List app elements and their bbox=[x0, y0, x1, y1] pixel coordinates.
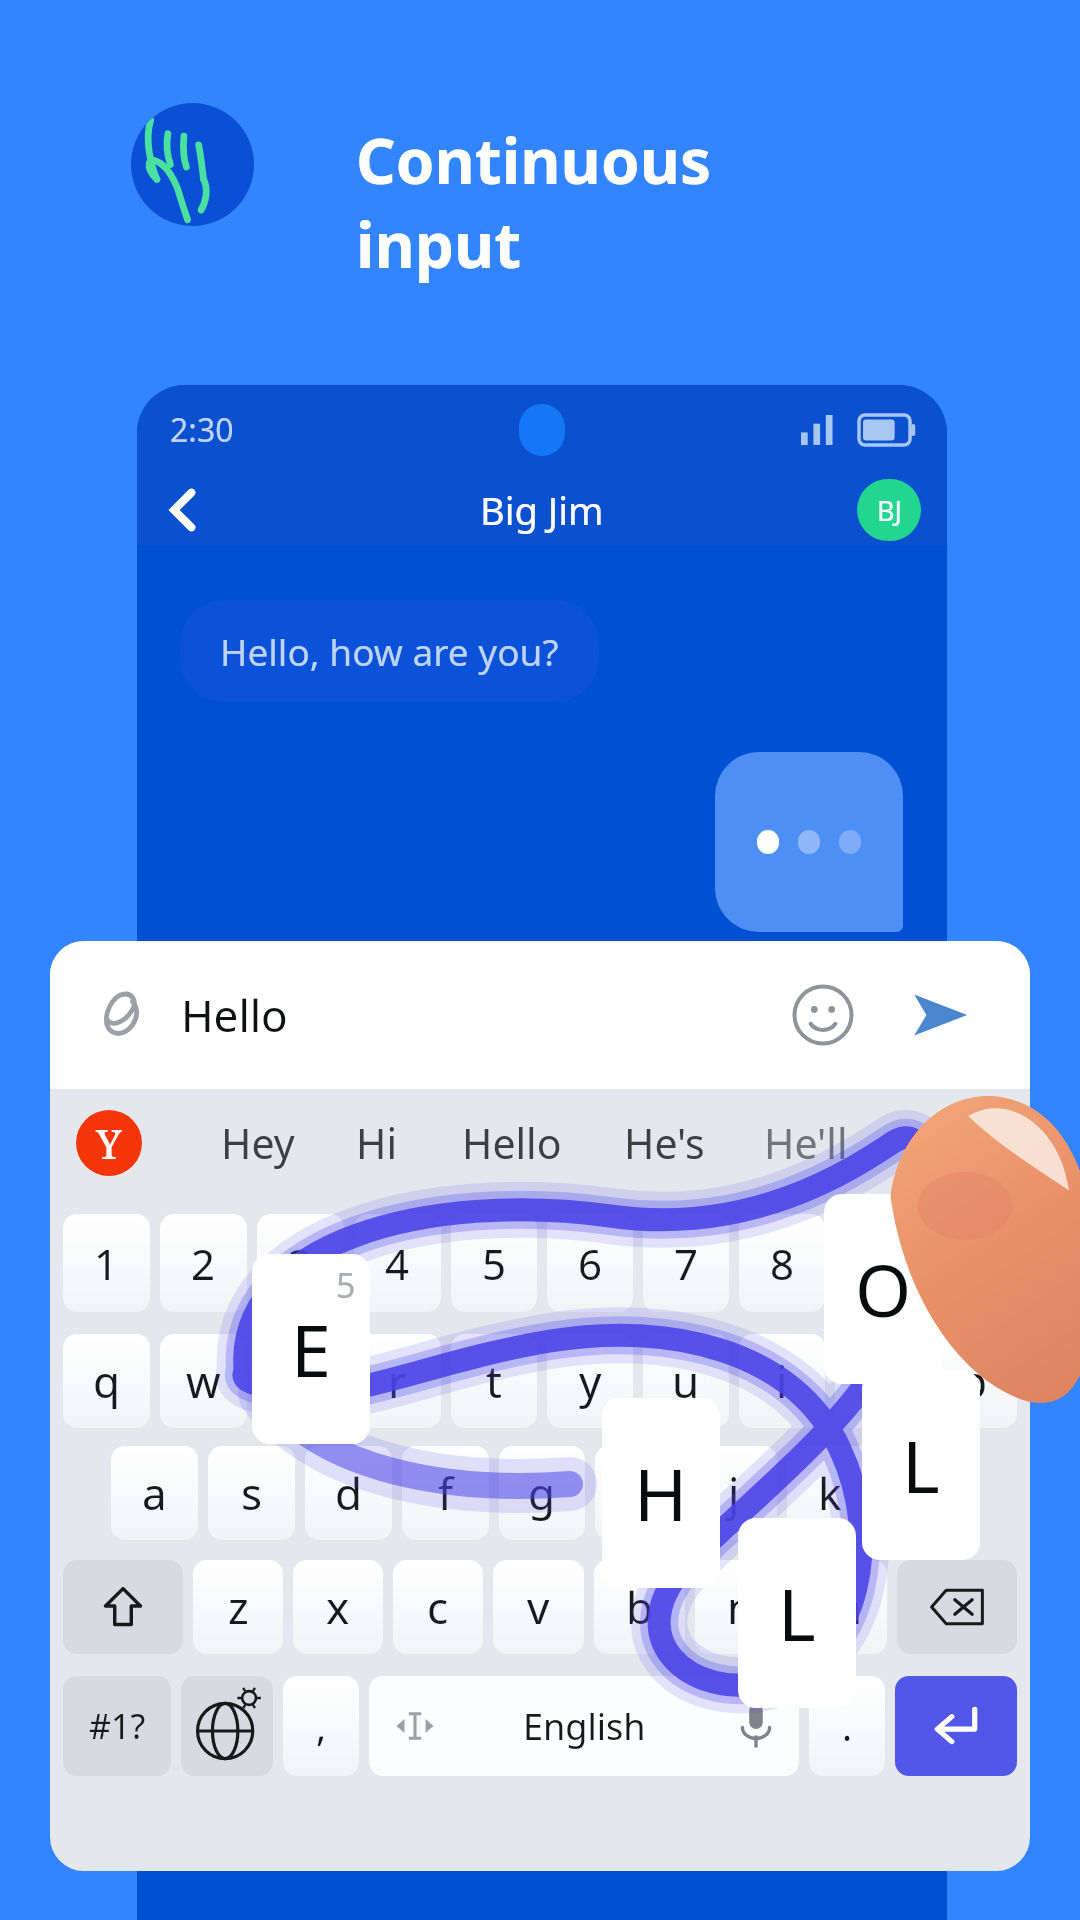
button[interactable]: Yandex bbox=[76, 1110, 142, 1176]
button[interactable]: w bbox=[160, 1334, 247, 1428]
button[interactable]: O bbox=[824, 1194, 942, 1384]
staticText: 2:30 bbox=[170, 408, 234, 452]
button[interactable]: j bbox=[691, 1446, 777, 1540]
button[interactable]: 4 bbox=[354, 1214, 441, 1312]
button[interactable]: He's bbox=[624, 1089, 705, 1197]
staticText: h bbox=[624, 1463, 652, 1523]
staticText: 1 bbox=[94, 1235, 119, 1292]
staticText: t bbox=[486, 1351, 502, 1411]
staticText: BJ bbox=[877, 492, 902, 529]
button[interactable]: t bbox=[451, 1334, 537, 1428]
button[interactable]: English bbox=[369, 1676, 799, 1776]
staticText: v bbox=[527, 1577, 550, 1637]
button[interactable]: E bbox=[252, 1254, 370, 1444]
staticText: b bbox=[626, 1577, 654, 1637]
staticText: e bbox=[288, 1351, 313, 1411]
staticText: f bbox=[438, 1463, 454, 1523]
button[interactable]: a bbox=[111, 1446, 198, 1540]
button[interactable]: r bbox=[354, 1334, 441, 1428]
button[interactable]: Language bbox=[181, 1676, 273, 1776]
staticText: 6 bbox=[578, 1235, 603, 1292]
button[interactable]: o bbox=[835, 1334, 921, 1428]
button[interactable]: n bbox=[695, 1560, 786, 1654]
button[interactable]: l bbox=[883, 1446, 969, 1540]
staticText: Continuous bbox=[356, 118, 712, 202]
staticText: i bbox=[776, 1351, 788, 1411]
staticText: #1? bbox=[89, 1703, 146, 1749]
button[interactable]: x bbox=[293, 1560, 383, 1654]
button[interactable]: d bbox=[305, 1446, 392, 1540]
staticText: q bbox=[93, 1351, 121, 1411]
button[interactable]: Enter bbox=[895, 1676, 1017, 1776]
button[interactable]: 1 bbox=[63, 1214, 150, 1312]
staticText: u bbox=[672, 1351, 700, 1411]
button[interactable]: , bbox=[283, 1676, 359, 1776]
button[interactable]: Hello, how are you? bbox=[180, 600, 599, 702]
button[interactable]: Hi bbox=[356, 1089, 397, 1197]
staticText: Big Jim bbox=[480, 484, 604, 536]
button[interactable]: Attach bbox=[92, 987, 148, 1043]
button[interactable]: 6 bbox=[547, 1214, 633, 1312]
button[interactable]: p bbox=[931, 1334, 1017, 1428]
button[interactable]: q bbox=[63, 1334, 150, 1428]
button[interactable]: i bbox=[739, 1334, 825, 1428]
button[interactable]: z bbox=[193, 1560, 283, 1654]
staticText: c bbox=[427, 1577, 449, 1637]
staticText: Hello, how are you? bbox=[220, 626, 559, 676]
button[interactable]: Hello bbox=[462, 1089, 562, 1197]
button[interactable]: b bbox=[594, 1560, 685, 1654]
button[interactable]: 2 bbox=[160, 1214, 247, 1312]
button[interactable]: c bbox=[393, 1560, 483, 1654]
staticText: w bbox=[186, 1351, 221, 1411]
button[interactable]: y bbox=[547, 1334, 633, 1428]
staticText: L bbox=[902, 1416, 940, 1514]
staticText: k bbox=[818, 1463, 842, 1523]
staticText: English bbox=[523, 1702, 646, 1751]
button[interactable]: m bbox=[796, 1560, 887, 1654]
button[interactable]: L bbox=[862, 1370, 980, 1560]
button[interactable]: Back bbox=[153, 479, 215, 541]
button[interactable]: 5 bbox=[451, 1214, 537, 1312]
button[interactable]: BJ bbox=[857, 479, 921, 541]
button[interactable]: g bbox=[499, 1446, 585, 1540]
button[interactable]: 3 bbox=[257, 1214, 344, 1312]
staticText: x bbox=[326, 1577, 350, 1637]
staticText: Hi bbox=[356, 1115, 397, 1171]
button[interactable]: Shift bbox=[63, 1560, 183, 1654]
button[interactable]: H bbox=[602, 1398, 720, 1588]
staticText: 4 bbox=[385, 1235, 410, 1292]
button[interactable]: Backspace bbox=[897, 1560, 1017, 1654]
button[interactable]: e bbox=[257, 1334, 344, 1428]
button[interactable]: Emoji bbox=[792, 984, 854, 1046]
staticText: . bbox=[842, 1700, 853, 1752]
button[interactable]: 9 bbox=[835, 1214, 921, 1312]
button[interactable]: h bbox=[595, 1446, 681, 1540]
button[interactable]: u bbox=[643, 1334, 729, 1428]
staticText: 9 bbox=[866, 1235, 891, 1292]
button[interactable]: L bbox=[738, 1518, 856, 1708]
button[interactable]: #1? bbox=[63, 1676, 171, 1776]
staticText: j bbox=[728, 1463, 740, 1523]
button[interactable]: k bbox=[787, 1446, 873, 1540]
staticText: Hello bbox=[181, 985, 288, 1045]
button[interactable]: 7 bbox=[643, 1214, 729, 1312]
staticText: d bbox=[335, 1463, 363, 1523]
button[interactable]: He'll bbox=[764, 1089, 848, 1197]
staticText: l bbox=[920, 1463, 932, 1523]
staticText: He'll bbox=[764, 1115, 848, 1171]
staticText: y bbox=[579, 1351, 602, 1411]
button[interactable]: . bbox=[809, 1676, 885, 1776]
staticText: input bbox=[356, 202, 522, 286]
button[interactable]: v bbox=[493, 1560, 584, 1654]
staticText: 5 bbox=[482, 1235, 507, 1292]
staticText: Hello bbox=[462, 1115, 562, 1171]
staticText: 3 bbox=[288, 1235, 313, 1292]
button[interactable]: s bbox=[208, 1446, 295, 1540]
button[interactable]: Hey bbox=[221, 1089, 295, 1197]
button[interactable]: f bbox=[402, 1446, 489, 1540]
button[interactable]: Send bbox=[906, 981, 974, 1049]
staticText: Y bbox=[96, 1116, 122, 1170]
button[interactable]: 8 bbox=[739, 1214, 825, 1312]
